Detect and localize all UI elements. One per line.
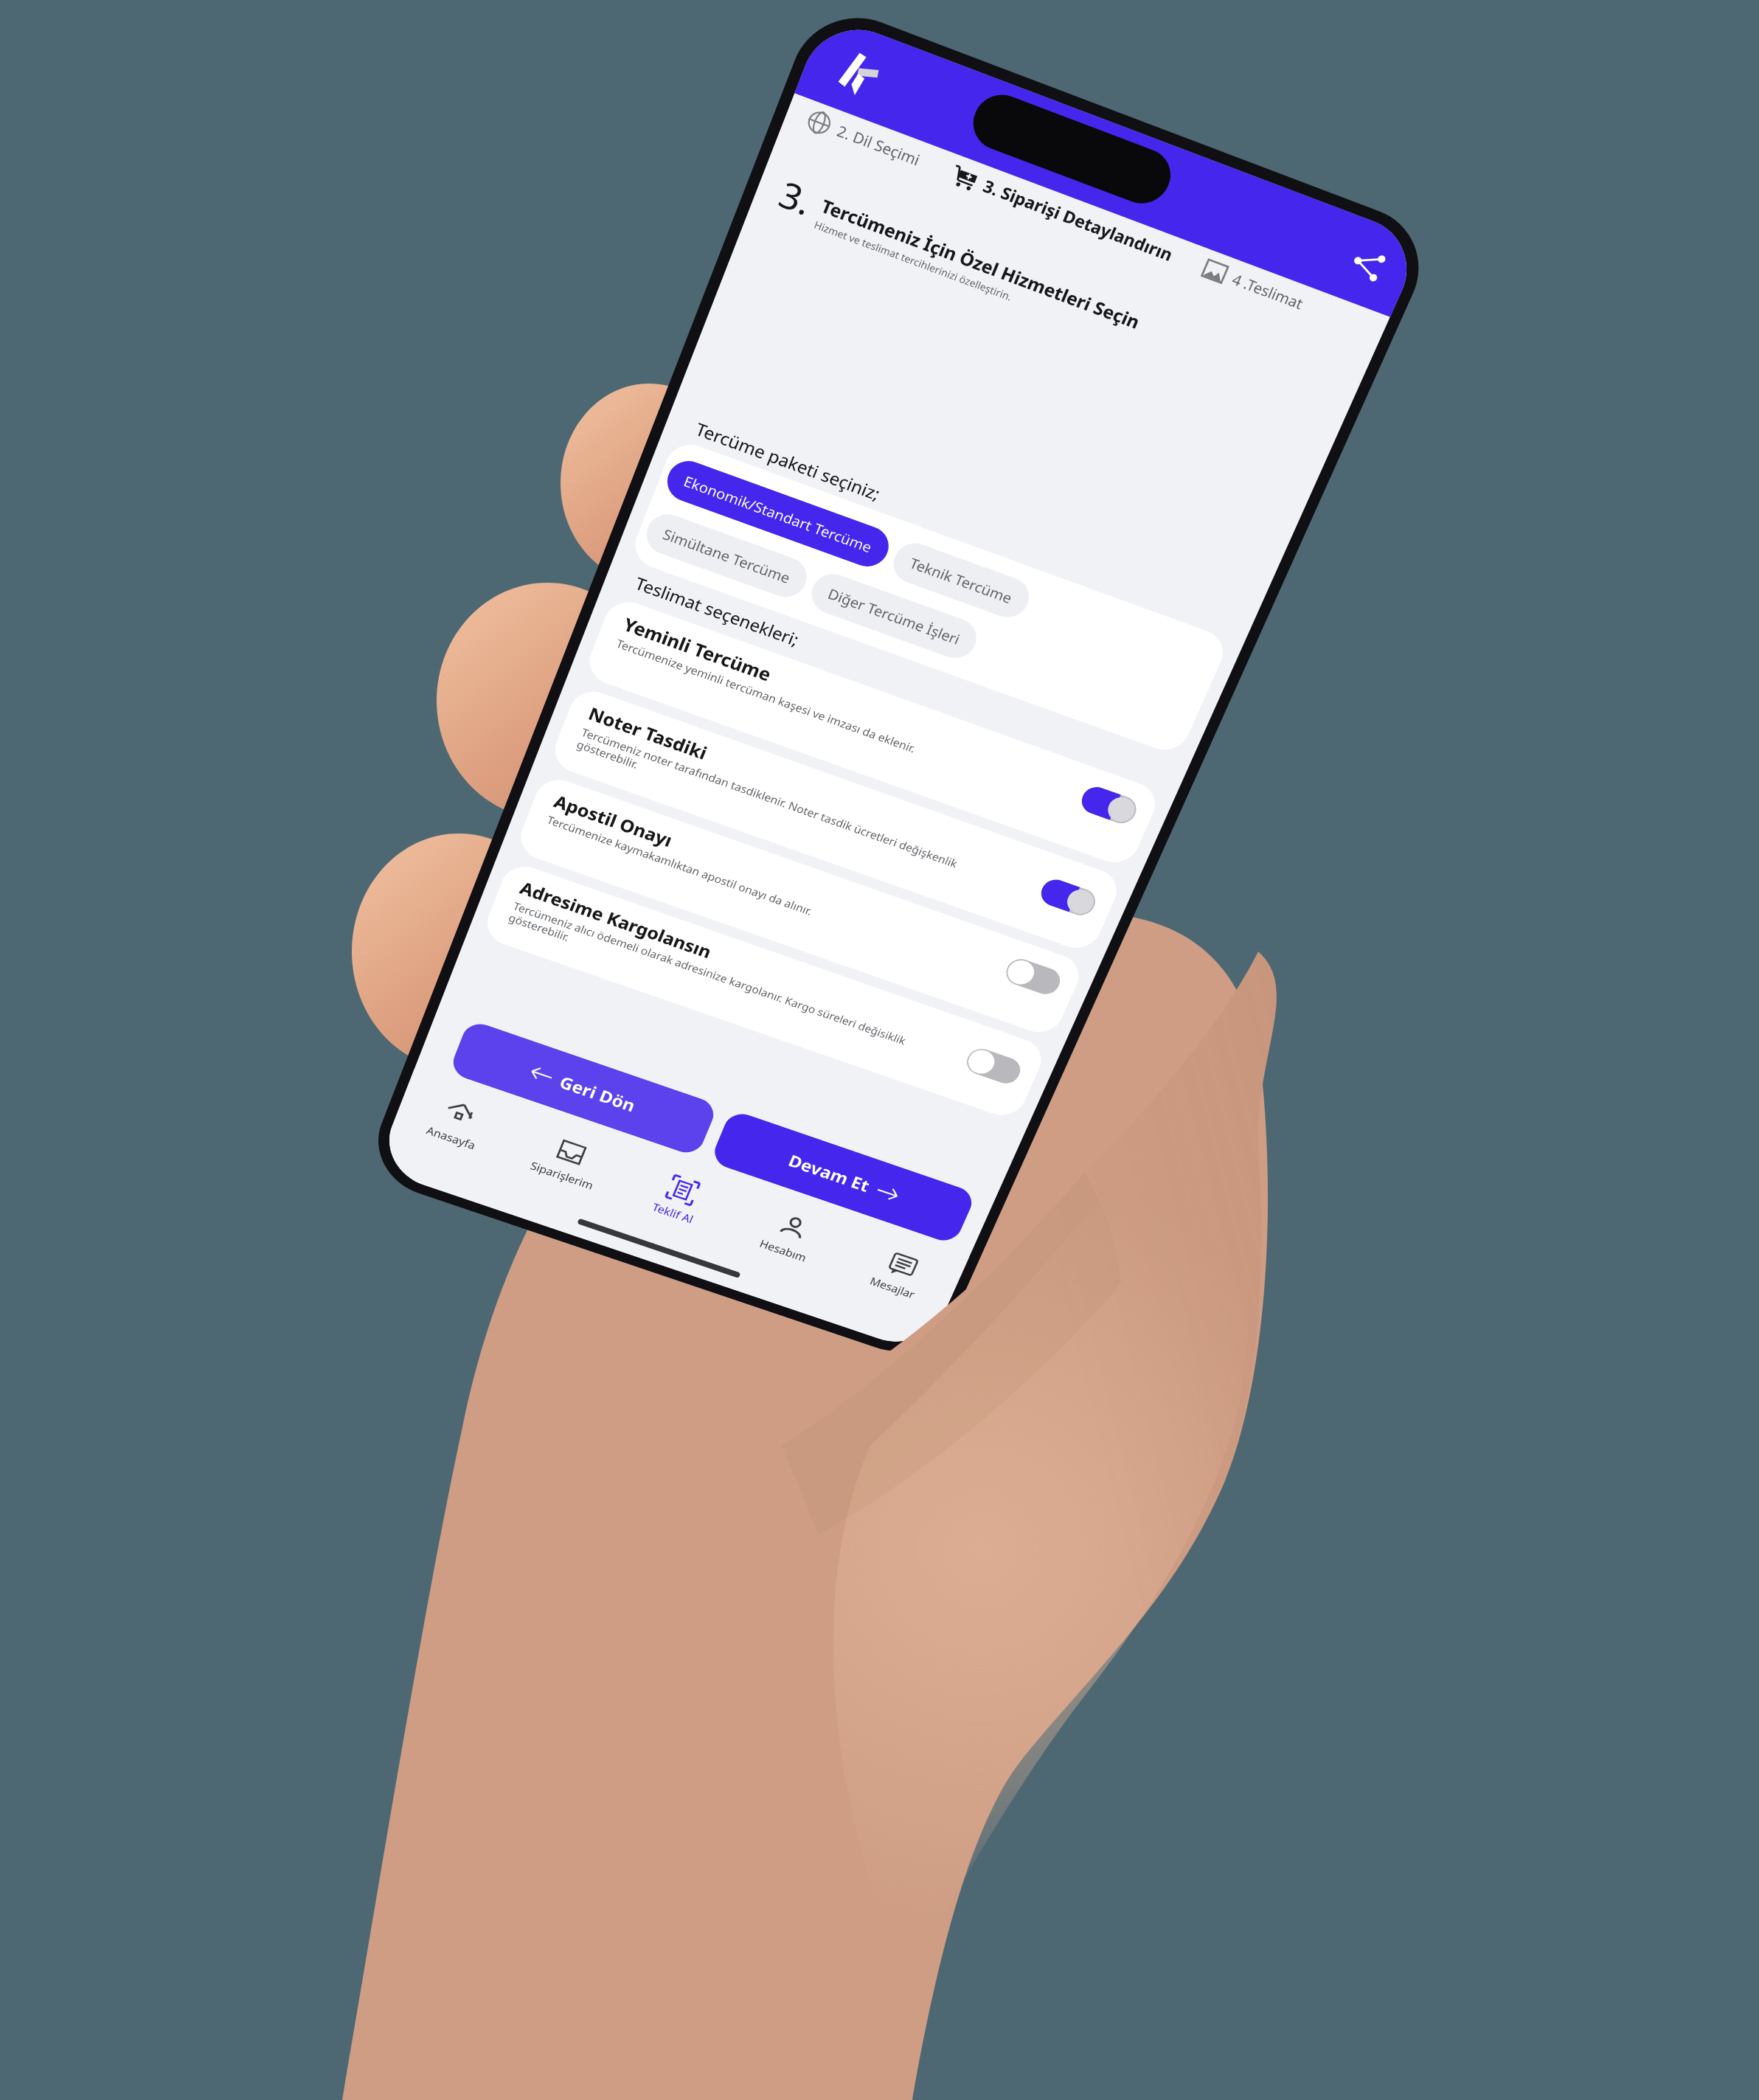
button[interactable]: Hesabım [720, 1183, 859, 1289]
staticText: Apostil Onayı [551, 789, 676, 852]
staticText: Teklif Al [650, 1200, 696, 1226]
button[interactable]: Share [1343, 240, 1393, 288]
staticText: Tercümenize yeminli tercüman kaşesi ve i… [614, 636, 918, 756]
button[interactable]: Mesajlar [829, 1220, 969, 1326]
button[interactable] [1037, 876, 1100, 919]
staticText: Mesajlar [868, 1274, 918, 1302]
button[interactable]: Noter Tasdiki [548, 685, 1124, 954]
button[interactable]: 3. Siparişi Detaylandırın [948, 161, 1177, 267]
button[interactable]: Siparişlerim [498, 1107, 638, 1214]
staticText: Diğer Tercüme İşleri [825, 584, 963, 649]
staticText: 4 .Teslimat [1229, 269, 1307, 313]
button[interactable]: Geri Dön [448, 1019, 719, 1157]
staticText: Siparişlerim [528, 1158, 596, 1192]
staticText: 2. Dil Seçimi [834, 120, 923, 170]
staticText: Hizmet ve teslimat tercihlerinizi özelle… [812, 218, 1014, 304]
staticText: Adresime Kargolansın [517, 876, 716, 963]
staticText: Simültane Tercüme [660, 524, 793, 587]
staticText: 3. [773, 169, 820, 226]
button[interactable]: 2. Dil Seçimi [805, 108, 924, 171]
staticText: Yeminli Tercüme [620, 612, 775, 686]
staticText: Tercümenize kaymakamlıktan apostil onayı… [545, 812, 815, 918]
button[interactable]: Simültane Tercüme [640, 508, 813, 603]
button[interactable]: Adresime Kargolansın [480, 860, 1049, 1121]
button[interactable]: 4 .Teslimat [1200, 257, 1307, 314]
button[interactable] [1077, 783, 1141, 827]
button[interactable]: Yeminli Tercüme [583, 595, 1163, 869]
button[interactable]: Anasayfa [387, 1069, 526, 1177]
staticText: Tercümeniz alıcı ödemeli olarak adresini… [507, 899, 930, 1067]
staticText: Teknik Tercüme [907, 553, 1016, 608]
staticText: Tercüme paketi seçiniz; [692, 417, 884, 506]
button[interactable]: Apostil Onayı [514, 773, 1086, 1039]
staticText: Ekonomik/Standart Tercüme [681, 471, 875, 557]
button[interactable]: Diğer Tercüme İşleri [806, 568, 983, 664]
staticText: Teslimat seçenekleri; [632, 572, 802, 651]
button[interactable] [963, 1045, 1025, 1087]
staticText: Devam Et [785, 1149, 874, 1197]
button[interactable]: Ekonomik/Standart Tercüme [661, 455, 895, 572]
staticText: Noter Tasdiki [585, 701, 711, 765]
button[interactable]: Teknik Tercüme [887, 537, 1035, 623]
button[interactable]: Devam Et [709, 1109, 977, 1245]
button[interactable]: Teklif Al [609, 1145, 749, 1252]
staticText: 3. Siparişi Detaylandırın [980, 174, 1176, 266]
staticText: Anasayfa [425, 1123, 478, 1152]
staticText: Geri Dön [556, 1071, 639, 1117]
staticText: Tercümeniz noter tarafından tasdiklenir.… [575, 725, 1004, 898]
staticText: Hesabım [758, 1236, 809, 1265]
button[interactable] [1002, 955, 1064, 998]
button[interactable]: Home [834, 48, 884, 97]
staticText: Tercümeniz İçin Özel Hizmetleri Seçin [818, 194, 1144, 334]
